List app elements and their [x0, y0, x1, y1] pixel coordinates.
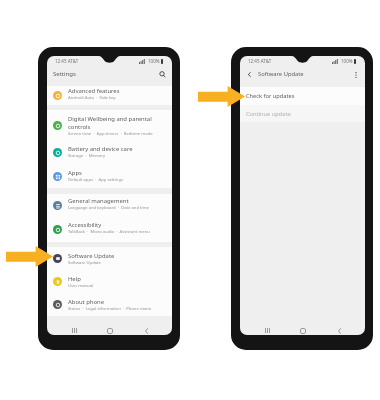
staticText: 12:45 AT&T [55, 58, 79, 64]
staticText: 100% [148, 58, 160, 64]
button[interactable]: Recents [261, 326, 273, 335]
staticText: Language and keyboard · Date and time [68, 205, 149, 211]
button[interactable]: Battery and device care [47, 140, 172, 164]
staticText: Storage · Memory [68, 153, 106, 159]
button[interactable]: Software Update [47, 247, 172, 270]
staticText: 100% [341, 58, 353, 64]
staticText: Continue update [246, 110, 291, 118]
button[interactable]: Recents [68, 326, 80, 335]
staticText: Software Update [68, 260, 101, 266]
button[interactable]: More options [350, 69, 361, 80]
button[interactable]: Search [157, 69, 168, 80]
staticText: Default apps · App settings [68, 177, 124, 183]
button[interactable]: About phone [47, 293, 172, 316]
staticText: 12:45 AT&T [248, 58, 272, 64]
button[interactable]: General management [47, 194, 172, 217]
staticText: Status · Legal information · Phone name [68, 306, 152, 312]
staticText: Settings [53, 70, 76, 78]
staticText: Software Update [258, 70, 304, 78]
button[interactable]: Advanced features [47, 86, 172, 105]
button[interactable]: Apps [47, 164, 172, 188]
button[interactable]: Check for updates [240, 87, 365, 105]
staticText: Check for updates [246, 92, 295, 100]
staticText: Battery and device care [68, 145, 133, 153]
staticText: TalkBack · Mono audio · Assistant menu [68, 229, 150, 235]
button[interactable]: Back [140, 326, 152, 335]
staticText: Help [68, 275, 81, 283]
button[interactable]: Digital Wellbeing and parental [47, 110, 172, 140]
button[interactable]: Home [104, 326, 116, 335]
staticText: Advanced features [68, 87, 120, 95]
button[interactable]: Accessibility [47, 217, 172, 242]
button[interactable]: Back [244, 69, 255, 80]
staticText: controls [68, 123, 91, 131]
staticText: About phone [68, 298, 105, 306]
staticText: Apps [68, 169, 82, 177]
staticText: Android Auto · Side key [68, 95, 116, 101]
button[interactable]: Back [333, 326, 345, 335]
staticText: User manual [68, 283, 94, 289]
staticText: Accessibility [68, 221, 102, 229]
staticText: Screen time · App timers · Bedtime mode [68, 131, 153, 137]
button[interactable]: Help [47, 270, 172, 293]
staticText: General management [68, 197, 129, 205]
staticText: Software Update [68, 252, 115, 260]
staticText: Digital Wellbeing and parental [68, 115, 152, 123]
button[interactable]: Home [297, 326, 309, 335]
